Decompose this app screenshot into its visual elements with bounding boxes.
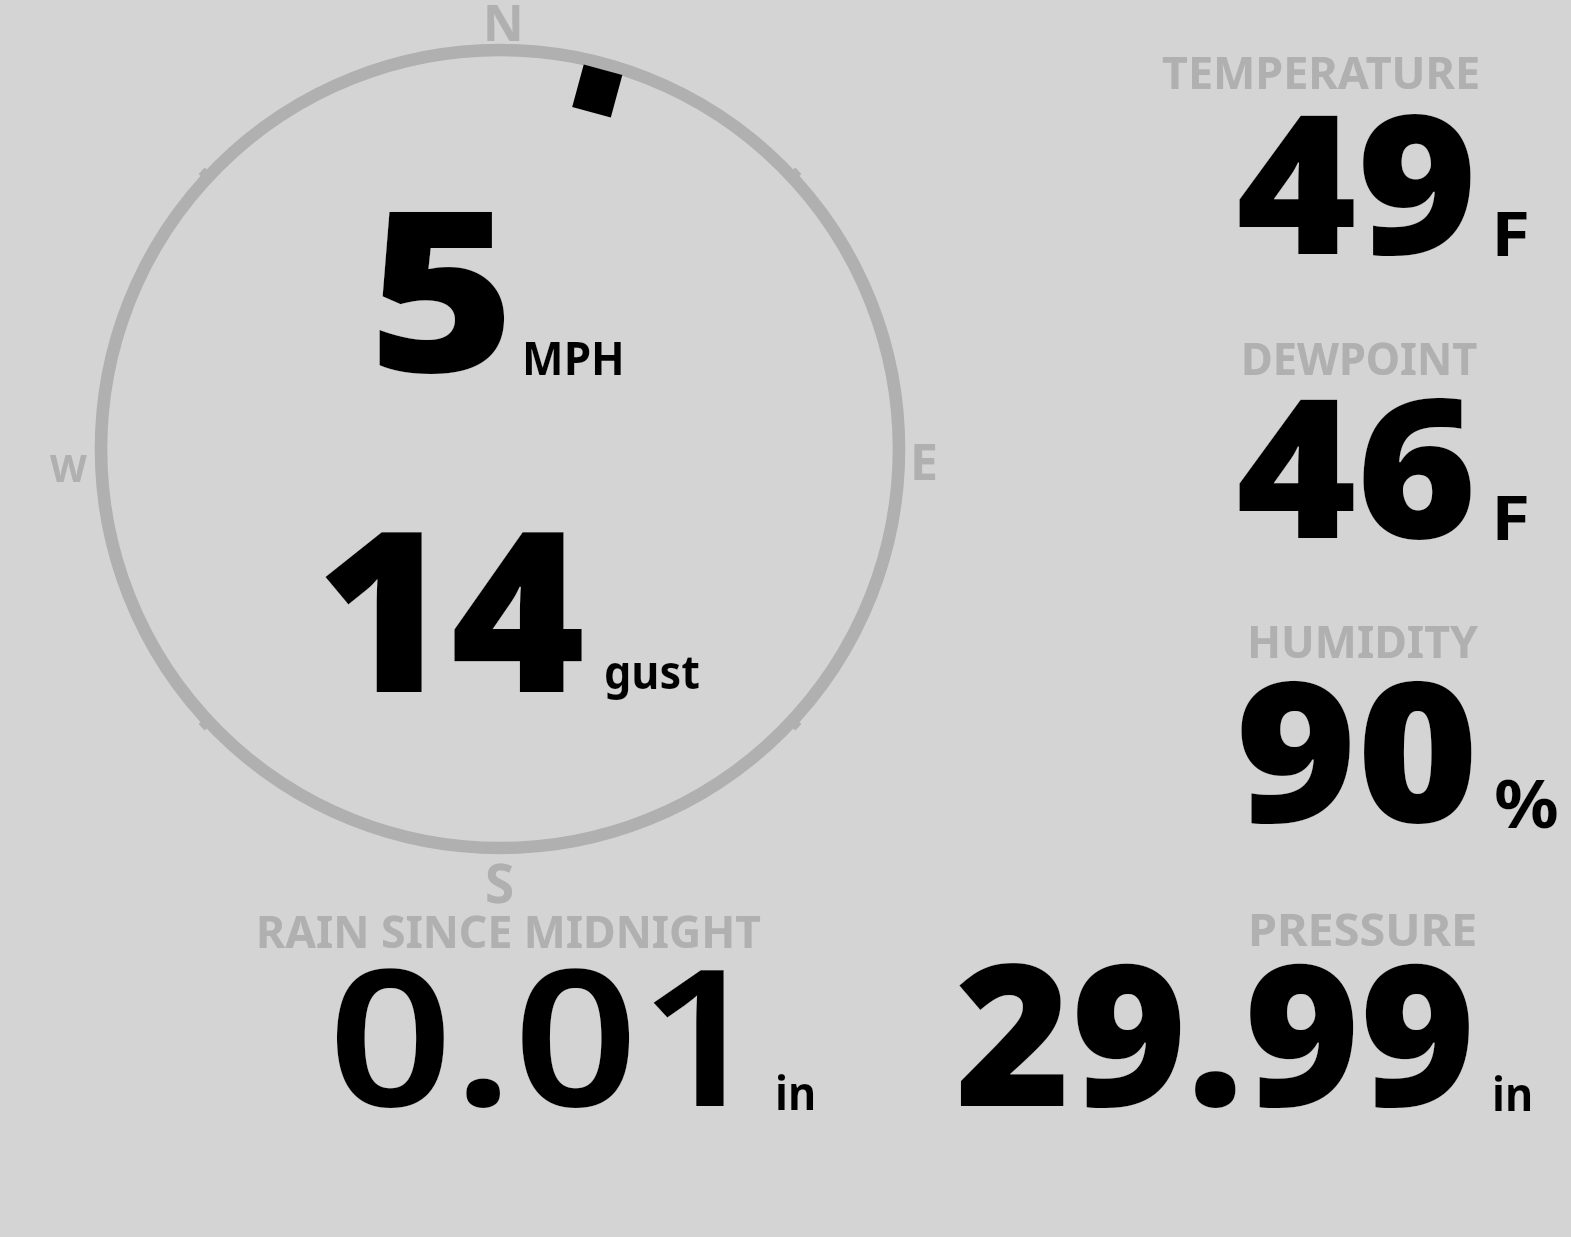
staticText: 14	[316, 454, 586, 758]
staticText: S	[485, 846, 515, 918]
staticText: gust	[604, 640, 701, 703]
button[interactable]: Pressure 29.99 inches of mercury	[945, 896, 1545, 1121]
staticText: 29.99	[955, 895, 1476, 1163]
staticText: E	[910, 427, 938, 495]
staticText: HUMIDITY	[1247, 610, 1478, 671]
button[interactable]: Humidity 90 percent	[1150, 608, 1560, 840]
staticText: RAIN SINCE MIDNIGHT	[256, 900, 762, 961]
button[interactable]: Wind direction compass, 5 MPH, gusting 1…	[85, 34, 915, 864]
button[interactable]: Temperature 49 degrees Fahrenheit	[1150, 40, 1550, 270]
staticText: 49	[1236, 48, 1478, 311]
staticText: W	[50, 441, 87, 493]
staticText: F	[1491, 191, 1531, 274]
staticText: in	[775, 1060, 816, 1124]
staticText: %	[1494, 757, 1559, 847]
staticText: F	[1491, 475, 1531, 558]
staticText: 0.01	[328, 903, 764, 1162]
staticText: DEWPOINT	[1241, 327, 1478, 388]
button[interactable]: Rain since midnight 0.01 inches	[250, 898, 830, 1123]
staticText: 90	[1235, 614, 1479, 880]
staticText: in	[1492, 1061, 1533, 1125]
staticText: 46	[1236, 332, 1478, 595]
staticText: N	[483, 0, 524, 56]
staticText: 5	[368, 134, 516, 438]
staticText: TEMPERATURE	[1162, 41, 1480, 102]
staticText: MPH	[522, 326, 626, 389]
button[interactable]: Dewpoint 46 degrees Fahrenheit	[1150, 325, 1550, 555]
staticText: PRESSURE	[1248, 898, 1477, 959]
